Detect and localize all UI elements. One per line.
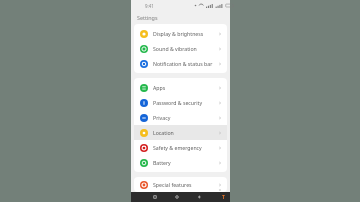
button[interactable]: Password & security bbox=[134, 95, 227, 110]
staticText: Notification & status bar bbox=[153, 60, 215, 67]
staticText: Privacy bbox=[153, 114, 215, 121]
staticText: Special features bbox=[153, 181, 215, 188]
staticText: Apps bbox=[153, 84, 215, 91]
button[interactable]: Special features bbox=[134, 179, 227, 190]
button[interactable]: Apps bbox=[134, 80, 227, 95]
staticText: Display & brightness bbox=[153, 30, 215, 37]
button[interactable]: Battery bbox=[134, 155, 227, 170]
staticText: Sound & vibration bbox=[153, 45, 215, 52]
button[interactable]: Back bbox=[188, 192, 210, 202]
button[interactable]: Privacy bbox=[134, 110, 227, 125]
button[interactable]: Display & brightness bbox=[134, 26, 227, 41]
staticText: Settings bbox=[137, 14, 158, 21]
staticText: T bbox=[222, 194, 225, 201]
button[interactable]: Recents bbox=[144, 192, 166, 202]
button[interactable]: Safety & emergency bbox=[134, 140, 227, 155]
button[interactable]: Location bbox=[134, 125, 227, 140]
staticText: 9:41 bbox=[145, 3, 154, 9]
staticText: Location bbox=[153, 129, 215, 136]
staticText: Battery bbox=[153, 159, 215, 166]
button[interactable]: Sound & vibration bbox=[134, 41, 227, 56]
staticText: Password & security bbox=[153, 99, 215, 106]
staticText: Safety & emergency bbox=[153, 144, 215, 151]
button[interactable]: Assistant bbox=[218, 192, 228, 202]
button[interactable]: Home bbox=[166, 192, 188, 202]
button[interactable]: Notification & status bar bbox=[134, 56, 227, 71]
